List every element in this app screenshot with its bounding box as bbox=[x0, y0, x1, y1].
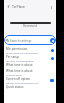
staticText: Quick status bbox=[6, 85, 24, 89]
button[interactable]: What time is about bbox=[6, 68, 54, 76]
button[interactable]: Mic permission bbox=[6, 46, 54, 54]
staticText: Screen off option bbox=[6, 77, 31, 81]
staticText: To Place bbox=[12, 4, 25, 9]
button[interactable]: Quick status bbox=[6, 84, 54, 90]
button[interactable]: Back bbox=[4, 0, 56, 13]
staticText: Decide how long before the bbox=[6, 81, 39, 84]
button[interactable]: Back bbox=[6, 4, 11, 9]
button[interactable]: Account bbox=[50, 38, 55, 43]
button[interactable]: More options bbox=[48, 4, 54, 10]
button[interactable]: Pin setup bbox=[6, 54, 54, 62]
staticText: What time is about bbox=[6, 63, 33, 67]
staticText: Removed bbox=[23, 24, 38, 28]
staticText: Security recommended bbox=[6, 59, 34, 62]
button[interactable]: Screen off option bbox=[6, 76, 54, 84]
staticText: Subtitle detail bbox=[6, 73, 23, 76]
staticText: Pin setup bbox=[6, 55, 20, 59]
staticText: What time is about bbox=[6, 69, 33, 73]
staticText: Mic permission bbox=[6, 47, 28, 51]
staticText: Some apps still have access bbox=[6, 51, 39, 54]
button[interactable]: What time is about bbox=[6, 62, 54, 68]
staticText: Search settings bbox=[10, 39, 32, 43]
button[interactable]: Search settings bbox=[4, 35, 56, 45]
